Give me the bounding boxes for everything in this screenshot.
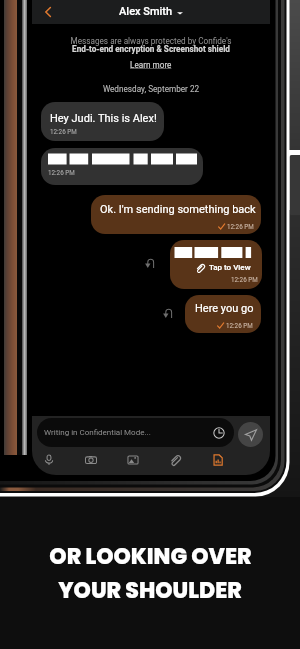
button[interactable]: Alex Smith	[119, 5, 183, 18]
other: Reply	[145, 258, 155, 268]
staticText: Tap to View	[209, 263, 251, 272]
staticText: Hey Judi. This is Alex!	[50, 112, 157, 125]
button[interactable]: Learn more	[130, 60, 172, 70]
button[interactable]: Hey Judi. This is Alex!	[41, 102, 164, 141]
button[interactable]: Send	[238, 422, 263, 447]
staticText: 12:26 PM	[226, 322, 253, 329]
staticText: Alex Smith	[119, 5, 173, 18]
button[interactable]: Back	[36, 0, 60, 24]
button[interactable]: Document	[212, 454, 224, 466]
button[interactable]: Writing in Confidential Mode...	[37, 418, 234, 447]
staticText: 12:26 PM	[227, 223, 254, 230]
staticText: 12:26 PM	[50, 128, 77, 135]
button[interactable]: Microphone	[43, 454, 55, 466]
staticText: Ok. I'm sending something back	[100, 203, 256, 216]
button[interactable]: 12:26 PM	[41, 148, 203, 185]
staticText: 12:26 PM	[48, 169, 75, 176]
button[interactable]: Tap to View	[170, 240, 262, 289]
staticText: Here you go	[195, 302, 254, 315]
staticText: 12:26 PM	[231, 276, 258, 283]
button[interactable]: Here you go	[185, 295, 261, 333]
button[interactable]: Attach file	[169, 454, 181, 466]
other: Timer	[213, 427, 225, 439]
staticText: YOUR SHOULDER	[58, 575, 242, 606]
other: Reply	[163, 308, 173, 318]
staticText: Wednesday, September 22	[32, 84, 270, 94]
staticText: OR LOOKING OVER	[49, 541, 252, 572]
button[interactable]: Camera	[85, 454, 97, 466]
button[interactable]: Gallery	[127, 454, 139, 466]
staticText: End-to-end encryption & Screenshot shiel…	[32, 44, 270, 54]
staticText: Messages are always protected by Confide…	[32, 36, 270, 46]
staticText: Writing in Confidential Mode...	[44, 428, 151, 437]
button[interactable]: Ok. I'm sending something back	[91, 195, 261, 234]
